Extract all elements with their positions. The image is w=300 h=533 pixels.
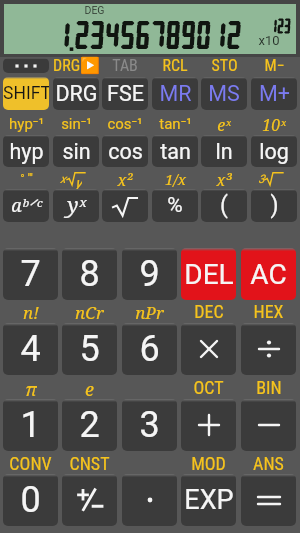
button[interactable]: 2: [62, 399, 117, 451]
staticText: 0: [20, 479, 41, 521]
staticText: tan⁻¹: [159, 115, 192, 133]
staticText: e: [85, 377, 94, 397]
button[interactable]: Square root: [102, 189, 148, 222]
staticText: MOD: [191, 453, 226, 473]
button[interactable]: MS: [201, 77, 247, 110]
staticText: CONV: [9, 453, 52, 473]
button[interactable]: ): [251, 189, 297, 222]
staticText: STO: [211, 56, 238, 75]
staticText: AC: [250, 258, 287, 291]
staticText: log: [259, 139, 289, 164]
staticText: TAB: [112, 56, 138, 75]
staticText: ): [270, 192, 279, 219]
button[interactable]: yˣ: [53, 189, 99, 222]
staticText: y: [75, 174, 82, 190]
staticText: RCL: [162, 56, 188, 75]
staticText: SHIFT: [3, 83, 49, 104]
staticText: ln: [215, 139, 233, 164]
staticText: 6: [139, 328, 160, 370]
button[interactable]: Divide: [241, 323, 296, 375]
staticText: cos⁻¹: [107, 115, 143, 133]
button[interactable]: Plus: [181, 399, 236, 451]
button[interactable]: FSE: [102, 77, 148, 110]
button[interactable]: 7: [3, 248, 58, 300]
button[interactable]: M+: [251, 77, 297, 110]
staticText: 7: [20, 253, 41, 295]
staticText: M+: [259, 81, 290, 106]
button[interactable]: 4: [3, 323, 58, 375]
staticText: MR: [159, 81, 192, 106]
button[interactable]: 3: [122, 399, 177, 451]
button[interactable]: 0: [3, 474, 58, 526]
staticText: 2: [79, 404, 100, 446]
staticText: M−: [264, 56, 285, 75]
button[interactable]: aᵇᐟᶜ: [3, 189, 49, 222]
button[interactable]: Minus: [241, 399, 296, 451]
button[interactable]: log: [251, 135, 297, 167]
button[interactable]: cos: [102, 135, 148, 167]
button[interactable]: %: [152, 189, 198, 222]
staticText: nCr: [75, 301, 104, 321]
staticText: 10ˣ: [262, 114, 286, 134]
button[interactable]: 9: [122, 248, 177, 300]
staticText: 5: [79, 328, 100, 370]
button[interactable]: Decimal point: [122, 474, 177, 526]
staticText: %: [167, 193, 183, 218]
staticText: cos: [108, 139, 143, 164]
staticText: eˣ: [217, 114, 231, 134]
button[interactable]: DRG: [53, 77, 99, 110]
staticText: DRG▶: [53, 56, 99, 75]
button[interactable]: Equals: [241, 474, 296, 526]
staticText: FSE: [107, 81, 144, 106]
button[interactable]: 8: [62, 248, 117, 300]
button[interactable]: 1: [3, 399, 58, 451]
staticText: aᵇᐟᶜ: [11, 193, 42, 218]
staticText: OCT: [193, 377, 224, 397]
staticText: 4: [20, 328, 41, 370]
button[interactable]: (: [201, 189, 247, 222]
button[interactable]: tan: [152, 135, 198, 167]
staticText: 1/x: [165, 169, 186, 189]
staticText: x: [60, 172, 66, 186]
staticText: x²: [117, 169, 133, 189]
staticText: 3: [258, 172, 265, 186]
staticText: 3: [139, 404, 160, 446]
staticText: x³: [216, 169, 232, 189]
staticText: π: [25, 377, 37, 397]
staticText: DEC: [194, 301, 224, 321]
staticText: n!: [23, 301, 39, 321]
button[interactable]: MR: [152, 77, 198, 110]
staticText: ANS: [253, 453, 284, 473]
staticText: sin⁻¹: [61, 115, 92, 133]
staticText: nPr: [135, 301, 164, 321]
button[interactable]: SHIFT: [3, 77, 49, 110]
staticText: EXP: [184, 484, 234, 516]
staticText: BIN: [256, 377, 282, 397]
staticText: hyp: [9, 139, 44, 164]
staticText: (: [220, 192, 228, 219]
button[interactable]: AC: [241, 248, 296, 300]
staticText: yˣ: [67, 191, 86, 220]
button[interactable]: Plus minus: [62, 474, 117, 526]
staticText: HEX: [253, 301, 284, 321]
button[interactable]: 6: [122, 323, 177, 375]
button[interactable]: Multiply: [181, 323, 236, 375]
button[interactable]: 5: [62, 323, 117, 375]
staticText: DEG: [84, 4, 105, 16]
staticText: 1: [20, 404, 41, 446]
staticText: x10: [258, 33, 280, 48]
button[interactable]: hyp: [3, 135, 49, 167]
button[interactable]: ln: [201, 135, 247, 167]
staticText: MS: [208, 81, 240, 106]
staticText: DRG: [55, 81, 98, 106]
button[interactable]: Menu: [3, 58, 49, 73]
button[interactable]: sin: [53, 135, 99, 167]
staticText: 9: [139, 253, 160, 295]
staticText: 8: [79, 253, 100, 295]
staticText: DEL: [184, 258, 234, 291]
button[interactable]: DEL: [181, 248, 236, 300]
button[interactable]: EXP: [181, 474, 236, 526]
staticText: CNST: [69, 453, 110, 473]
staticText: sin: [62, 139, 91, 164]
staticText: tan: [160, 139, 191, 164]
